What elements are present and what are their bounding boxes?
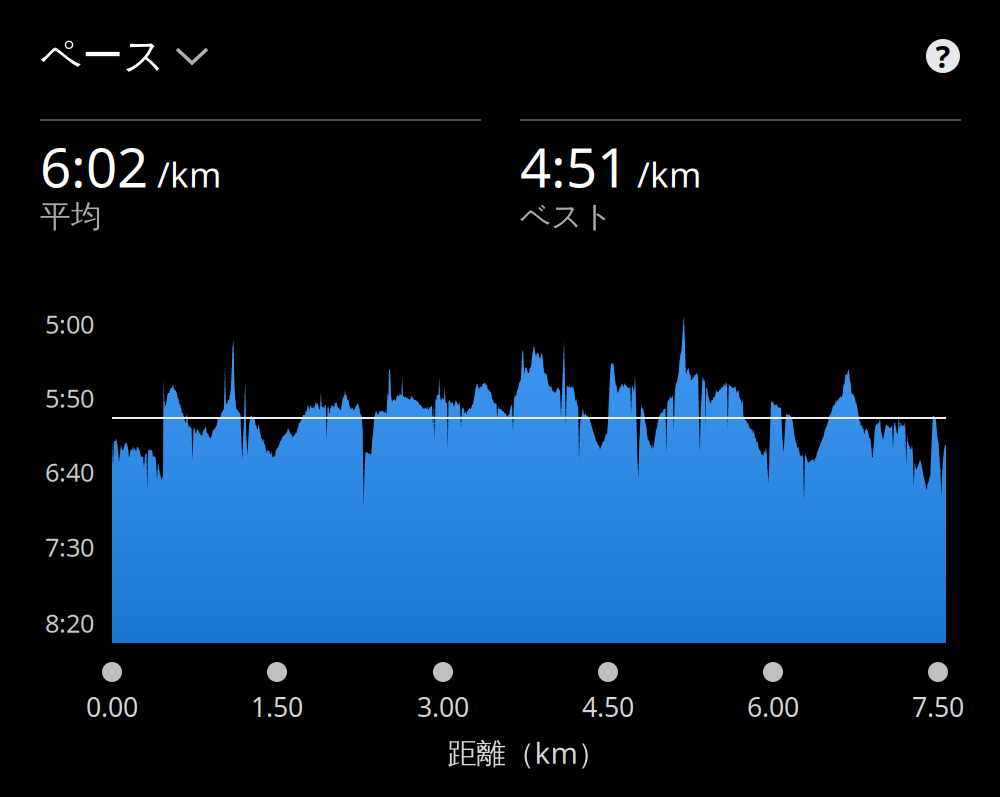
staticText: 7.50 [912, 689, 964, 724]
staticText: 7:30 [45, 530, 94, 564]
staticText: 8:20 [45, 606, 94, 640]
staticText: 距離（km） [447, 733, 606, 772]
staticText: 平均 [40, 198, 102, 235]
staticText: 6:02 [40, 130, 148, 203]
button[interactable]: ペース [40, 31, 209, 81]
staticText: 4:51 [520, 130, 628, 203]
staticText: ペース [40, 31, 165, 81]
staticText: 4.50 [582, 689, 634, 724]
staticText: 5:00 [45, 307, 94, 341]
staticText: /km [637, 151, 701, 197]
staticText: 1.50 [251, 689, 303, 724]
staticText: ? [935, 36, 950, 76]
staticText: 5:50 [45, 381, 94, 415]
staticText: 3.00 [417, 689, 469, 724]
staticText: /km [157, 151, 221, 197]
staticText: 6:40 [45, 455, 94, 489]
staticText: ベスト [520, 198, 613, 235]
button[interactable]: ヘルプ [926, 36, 960, 76]
staticText: 0.00 [86, 689, 138, 724]
staticText: 6.00 [747, 689, 799, 724]
